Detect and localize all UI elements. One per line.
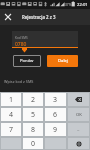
staticText: 0780 bbox=[15, 41, 27, 47]
button[interactable]: back bbox=[68, 93, 89, 106]
staticText: .- bbox=[77, 127, 80, 133]
staticText: 3 bbox=[53, 95, 58, 105]
button[interactable]: Close bbox=[0, 9, 16, 25]
button[interactable]: gear bbox=[68, 138, 89, 149]
button[interactable]: 0 bbox=[23, 138, 43, 149]
button[interactable]: 4 bbox=[1, 108, 21, 121]
staticText: 2 bbox=[31, 95, 36, 105]
button[interactable]: 7 bbox=[1, 123, 21, 136]
staticText: Dalej bbox=[58, 58, 68, 64]
staticText: 5 bbox=[31, 110, 36, 120]
staticText: Ponów bbox=[20, 58, 34, 64]
staticText: 4 bbox=[9, 110, 14, 120]
staticText: 1 bbox=[9, 95, 14, 105]
staticText: Kod SMS bbox=[15, 36, 28, 40]
button[interactable]: 8 bbox=[23, 123, 43, 136]
button[interactable]: 1 bbox=[1, 93, 21, 106]
button[interactable]: Kod SMS bbox=[12, 31, 78, 47]
button[interactable]: Ponów bbox=[13, 55, 41, 67]
button[interactable]: ok bbox=[68, 108, 89, 121]
staticText: OK bbox=[76, 112, 82, 118]
button[interactable]: Dalej bbox=[47, 55, 78, 67]
button[interactable]: 3 bbox=[45, 93, 66, 106]
staticText: 7 bbox=[9, 125, 14, 135]
staticText: 37% bbox=[65, 3, 72, 7]
staticText: Wpisz kod z SMS bbox=[4, 79, 34, 84]
staticText: 9 bbox=[53, 125, 58, 135]
staticText: 6 bbox=[53, 110, 58, 120]
staticText: Rejestracja 2 z 3 bbox=[22, 14, 56, 20]
button[interactable]: 9 bbox=[45, 123, 66, 136]
staticText: 0 bbox=[31, 139, 36, 149]
staticText: 22:01 bbox=[77, 2, 88, 8]
button[interactable]: 5 bbox=[23, 108, 43, 121]
button[interactable]: 6 bbox=[45, 108, 66, 121]
staticText: 8 bbox=[31, 125, 36, 135]
button[interactable]: 2 bbox=[23, 93, 43, 106]
